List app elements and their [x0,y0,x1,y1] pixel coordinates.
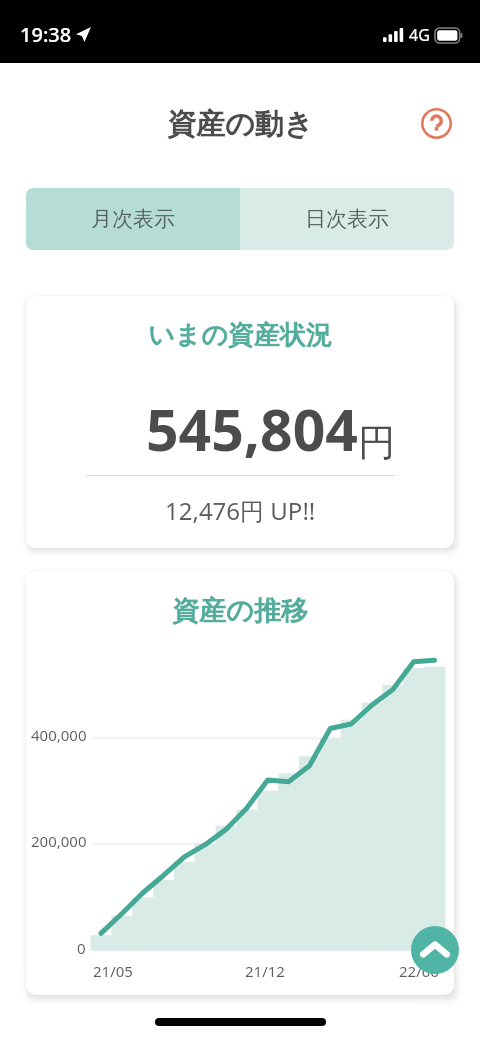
staticText: 日次表示 [305,206,389,232]
button[interactable]: いまの資産状況 [26,296,454,548]
staticText: 22/06 [399,961,439,981]
staticText: 19:38 [20,21,72,48]
staticText: 200,000 [31,831,87,851]
staticText: 資産の推移 [172,594,308,628]
staticText: 4G [409,24,430,46]
staticText: 21/05 [93,961,133,981]
button[interactable]: 月次表示 [26,188,240,250]
staticText: 21/12 [245,961,285,981]
staticText: 月次表示 [91,206,175,232]
button[interactable]: 日次表示 [240,188,454,250]
staticText: 400,000 [31,725,87,745]
button[interactable]: Scroll to top [411,926,459,974]
button[interactable]: Help [415,103,457,145]
staticText: 12,476円 UP!! [165,494,316,527]
staticText: 円 [358,419,395,466]
staticText: 資産の動き [167,106,314,143]
staticText: 545,804 [146,390,358,468]
staticText: いまの資産状況 [148,319,332,352]
staticText: 0 [77,938,86,958]
